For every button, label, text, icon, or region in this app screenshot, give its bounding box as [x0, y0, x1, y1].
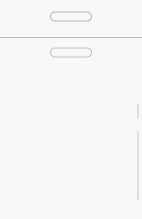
button[interactable] [0, 0, 142, 37]
button[interactable] [0, 38, 142, 75]
